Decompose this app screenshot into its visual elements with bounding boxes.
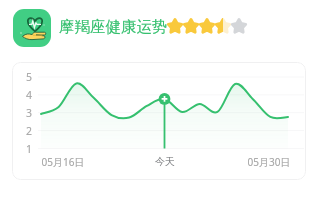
staticText: 摩羯座健康运势 <box>59 17 168 37</box>
staticText: 2 <box>20 124 32 138</box>
staticText: 1 <box>20 142 32 156</box>
staticText: 3 <box>20 106 32 120</box>
staticText: 05月30日 <box>238 155 300 169</box>
staticText: 05月16日 <box>38 155 88 169</box>
staticText: 今天 <box>140 155 190 168</box>
button[interactable]: Capricorn health fortune <box>13 9 51 47</box>
staticText: 5 <box>20 70 32 84</box>
staticText: 4 <box>20 88 32 102</box>
button[interactable]: 5 <box>12 62 306 180</box>
